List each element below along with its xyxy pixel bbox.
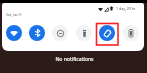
button[interactable]: Battery Saver bbox=[123, 25, 139, 41]
button[interactable]: Wi-Fi bbox=[6, 25, 22, 41]
button[interactable]: Bluetooth bbox=[29, 25, 45, 41]
button[interactable]: Auto-rotate bbox=[99, 25, 115, 41]
button[interactable]: Do not disturb bbox=[52, 25, 68, 41]
staticText: Sat, Jan 9 bbox=[6, 12, 22, 17]
button[interactable]: Flashlight bbox=[76, 25, 92, 41]
staticText: 1 day, 20 hr bbox=[116, 6, 136, 11]
staticText: No notifications bbox=[55, 56, 94, 63]
